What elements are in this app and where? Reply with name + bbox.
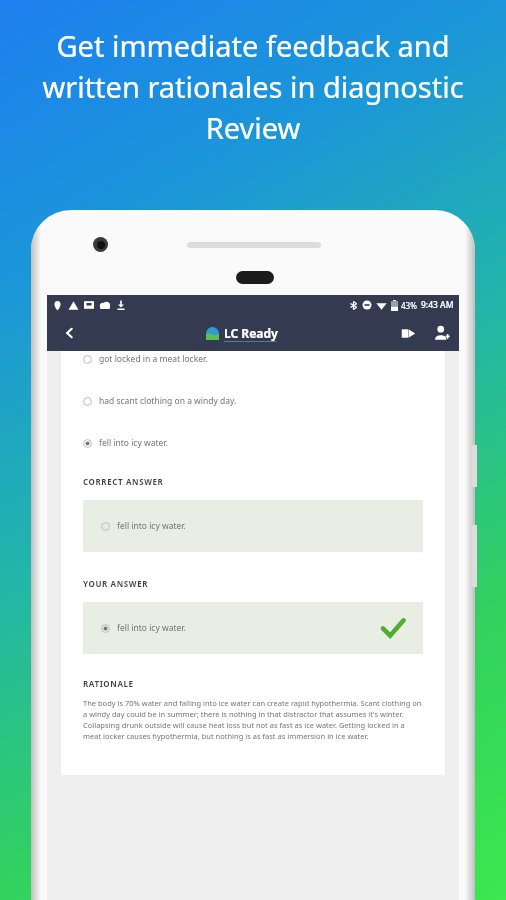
- button[interactable]: Sign in: [391, 316, 425, 350]
- button[interactable]: Back: [47, 315, 93, 351]
- button[interactable]: fell into icy water.: [83, 500, 423, 552]
- staticText: had scant clothing on a windy day.: [99, 395, 237, 407]
- button[interactable]: fell into icy water.: [83, 437, 445, 449]
- button[interactable]: had scant clothing on a windy day.: [83, 395, 445, 407]
- button[interactable]: Add user: [425, 316, 459, 350]
- staticText: fell into icy water.: [117, 520, 186, 532]
- staticText: RATIONALE: [83, 678, 134, 689]
- staticText: Get immediate feedback and written ratio…: [18, 26, 488, 148]
- staticText: fell into icy water.: [117, 622, 186, 634]
- staticText: 43%: [401, 300, 417, 311]
- staticText: got locked in a meat locker.: [99, 353, 208, 365]
- staticText: CORRECT ANSWER: [83, 476, 164, 487]
- staticText: YOUR ANSWER: [83, 578, 149, 589]
- button[interactable]: got locked in a meat locker.: [83, 353, 445, 365]
- button[interactable]: fell into icy water.: [83, 602, 423, 654]
- staticText: 9:43 AM: [421, 299, 454, 311]
- staticText: The body is 70% water and falling into i…: [83, 698, 423, 741]
- staticText: fell into icy water.: [99, 437, 168, 449]
- staticText: LC Ready: [224, 325, 278, 341]
